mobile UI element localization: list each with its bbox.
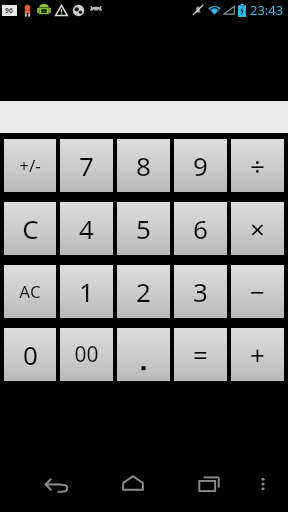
staticText: 7: [79, 148, 94, 183]
staticText: =: [193, 337, 208, 372]
staticText: 5: [136, 211, 151, 246]
staticText: 8: [136, 148, 151, 183]
button[interactable]: 6: [174, 202, 227, 255]
button[interactable]: [117, 328, 170, 381]
staticText: 2: [136, 274, 151, 309]
button[interactable]: 0: [4, 328, 56, 381]
staticText: 96: [5, 6, 14, 16]
button[interactable]: C: [4, 202, 56, 255]
staticText: ×: [250, 211, 265, 246]
staticText: 00: [74, 340, 99, 369]
button[interactable]: +/-: [4, 139, 56, 192]
button[interactable]: 5: [117, 202, 170, 255]
staticText: 1: [79, 274, 94, 309]
staticText: 9: [193, 148, 208, 183]
button[interactable]: 8: [117, 139, 170, 192]
button[interactable]: 7: [60, 139, 113, 192]
staticText: 0: [23, 337, 38, 372]
button[interactable]: 4: [60, 202, 113, 255]
button[interactable]: Home: [109, 460, 157, 508]
button[interactable]: Back: [33, 460, 81, 508]
button[interactable]: =: [174, 328, 227, 381]
staticText: +/-: [19, 154, 41, 177]
staticText: AC: [19, 280, 41, 303]
button[interactable]: ×: [231, 202, 284, 255]
button[interactable]: 1: [60, 265, 113, 318]
button[interactable]: ÷: [231, 139, 284, 192]
button[interactable]: 9: [174, 139, 227, 192]
button[interactable]: −: [231, 265, 284, 318]
button[interactable]: More options: [246, 467, 280, 501]
button[interactable]: 00: [60, 328, 113, 381]
staticText: +: [250, 337, 265, 372]
staticText: C: [22, 211, 39, 246]
staticText: 4: [79, 211, 94, 246]
button[interactable]: AC: [4, 265, 56, 318]
staticText: −: [250, 274, 265, 309]
button[interactable]: +: [231, 328, 284, 381]
button[interactable]: 2: [117, 265, 170, 318]
staticText: ÷: [250, 148, 265, 183]
staticText: 6: [193, 211, 208, 246]
staticText: 3: [193, 274, 208, 309]
button[interactable]: Recent apps: [185, 460, 233, 508]
button[interactable]: 3: [174, 265, 227, 318]
staticText: 23:43: [250, 1, 284, 19]
